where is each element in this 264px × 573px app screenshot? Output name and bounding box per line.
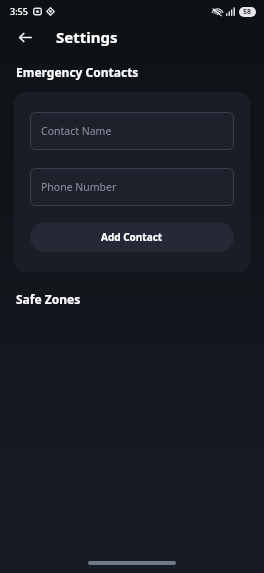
staticText: Emergency Contacts: [16, 64, 139, 80]
staticText: 3:55: [10, 5, 28, 17]
staticText: 58: [243, 7, 252, 17]
button[interactable]: Contact Name: [30, 112, 234, 150]
button[interactable]: Phone Number: [30, 168, 234, 206]
staticText: Phone Number: [41, 180, 117, 194]
staticText: Contact Name: [41, 124, 112, 138]
button[interactable]: Back: [12, 24, 38, 50]
staticText: Settings: [56, 27, 118, 47]
staticText: Add Contact: [101, 230, 163, 244]
button[interactable]: Add Contact: [30, 222, 234, 252]
staticText: Safe Zones: [16, 291, 81, 307]
